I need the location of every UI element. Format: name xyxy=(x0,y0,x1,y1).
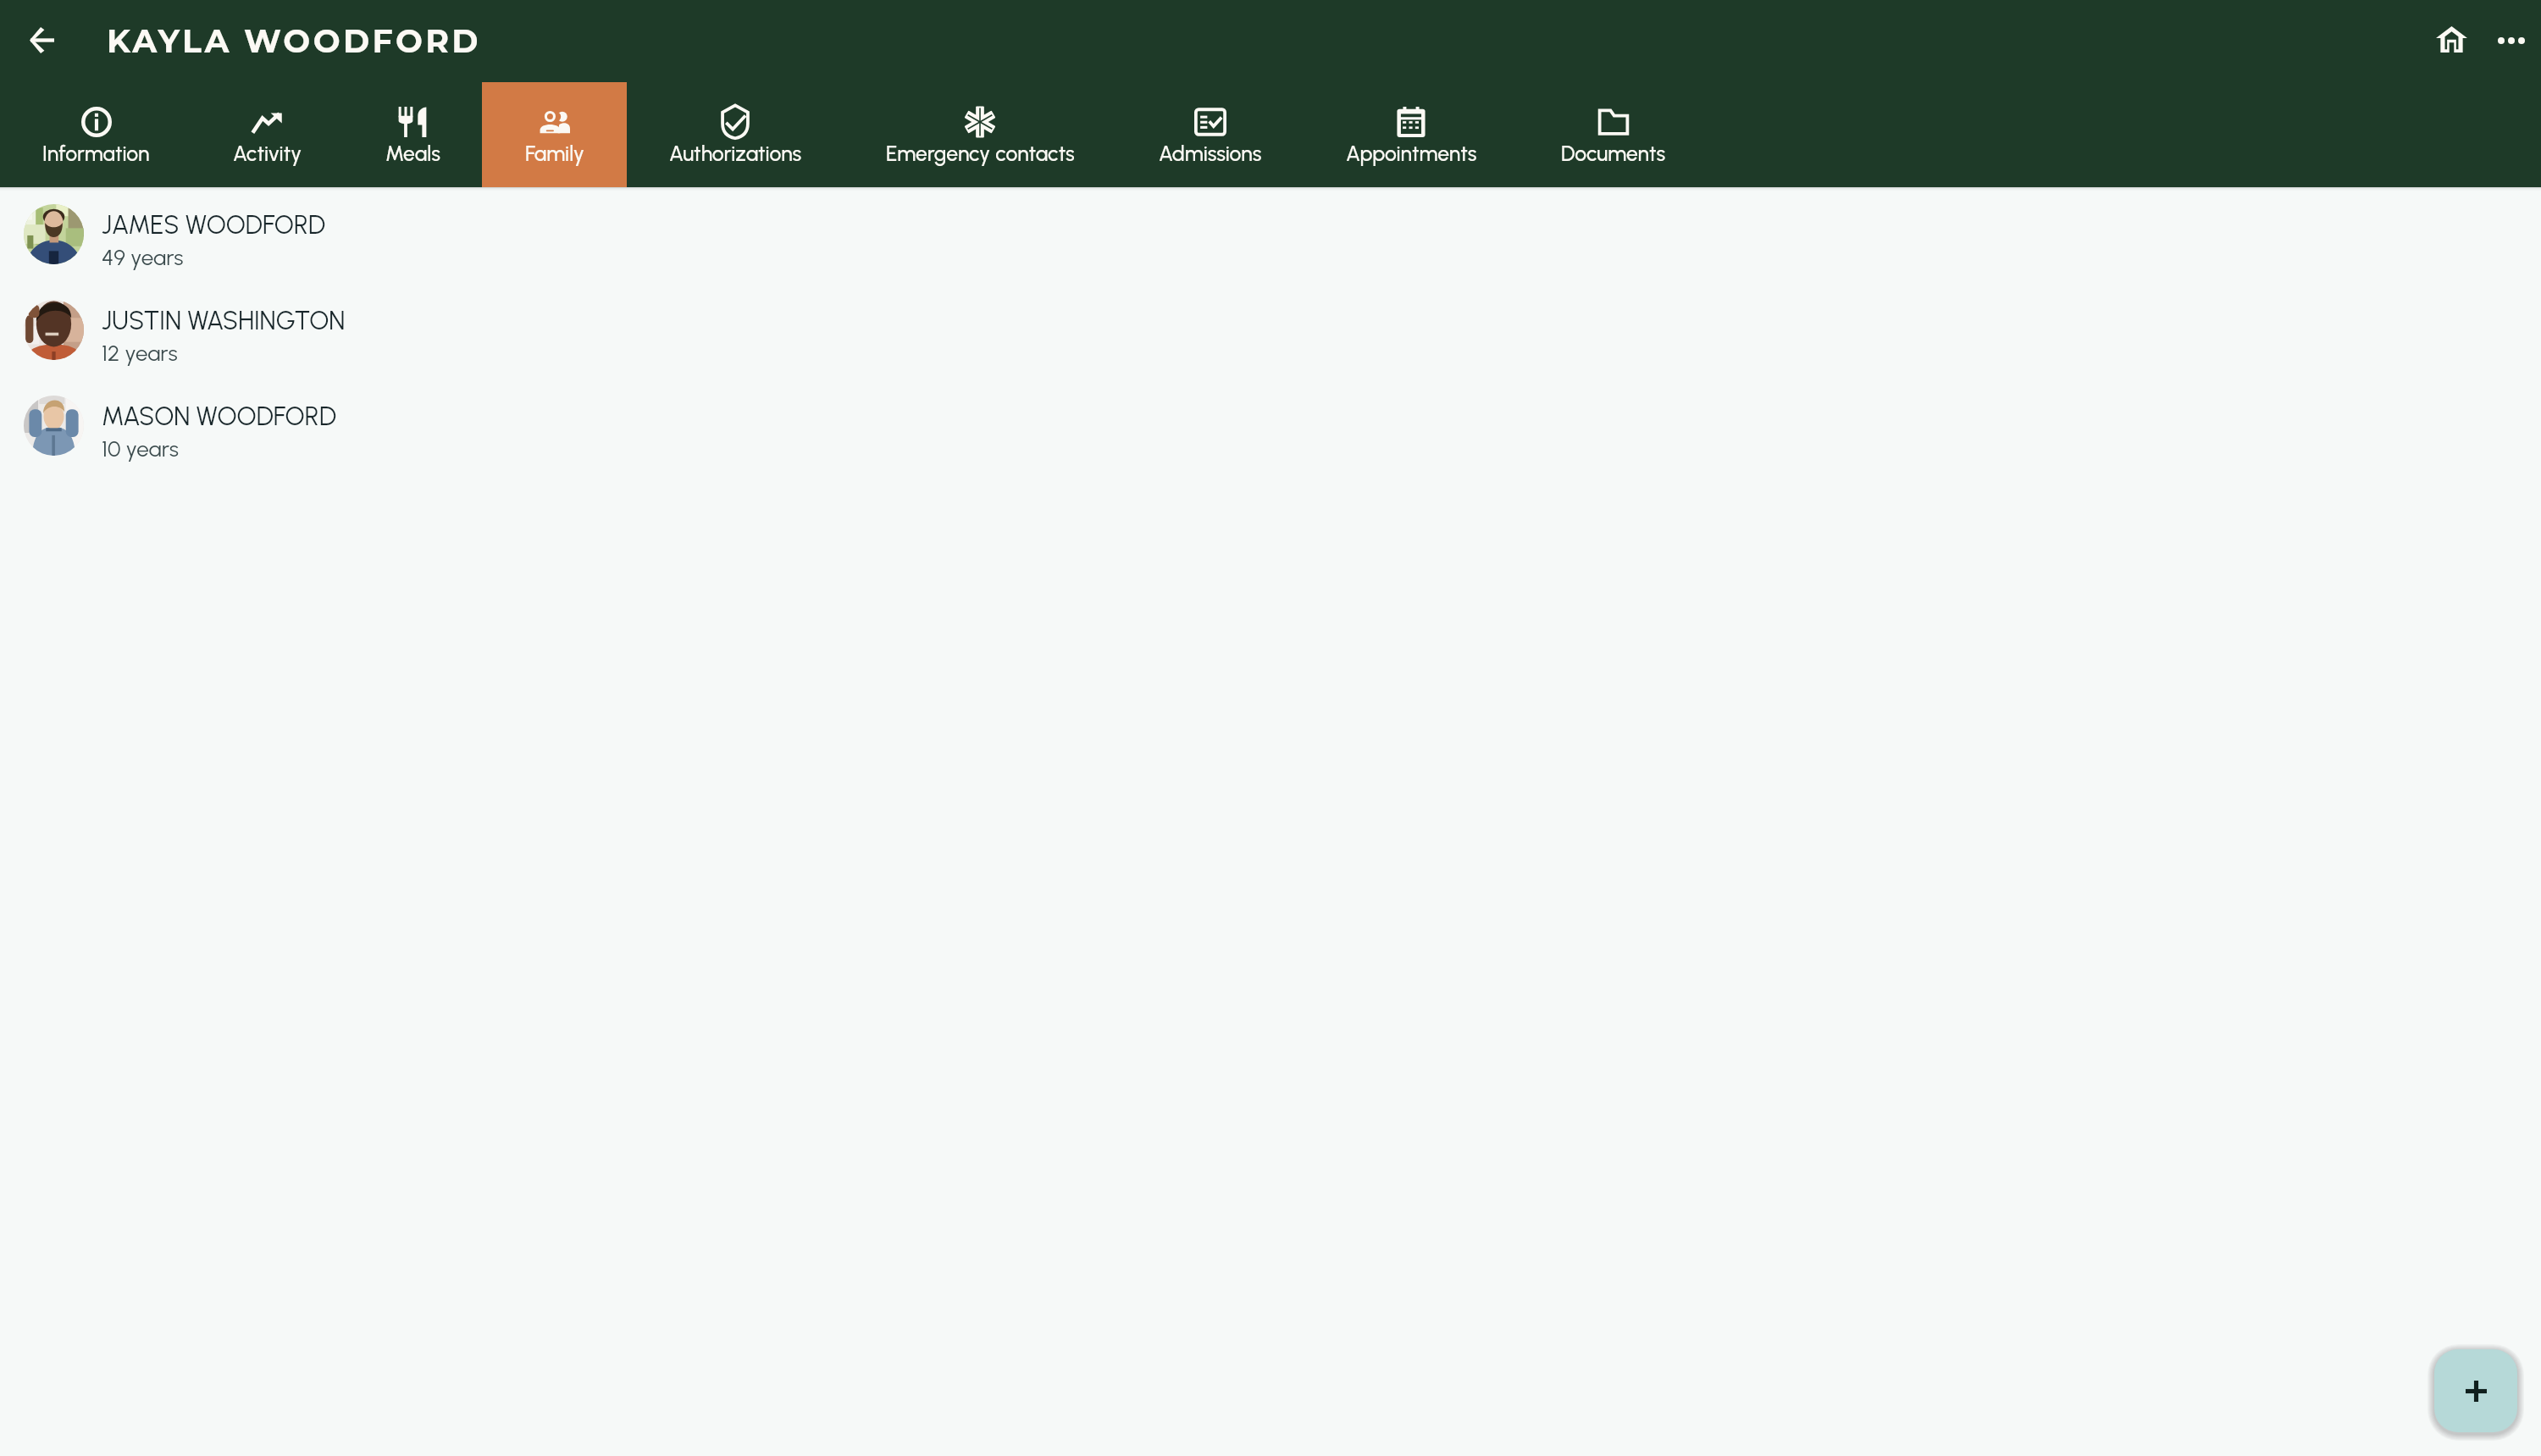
button[interactable]: JUSTIN WASHINGTON xyxy=(0,283,2541,379)
staticText: JAMES WOODFORD xyxy=(102,209,326,240)
staticText: Admissions xyxy=(1159,141,1262,167)
button[interactable]: Home xyxy=(2428,15,2475,63)
staticText: Appointments xyxy=(1346,141,1477,167)
button[interactable]: Documents xyxy=(1519,82,1708,187)
staticText: 49 years xyxy=(102,244,184,270)
button[interactable]: More options xyxy=(2488,17,2535,64)
button[interactable]: Admissions xyxy=(1116,82,1304,187)
staticText: Activity xyxy=(233,141,302,167)
staticText: MASON WOODFORD xyxy=(102,401,337,431)
button[interactable]: Meals xyxy=(343,82,482,187)
staticText: Authorizations xyxy=(669,141,802,167)
button[interactable]: MASON WOODFORD xyxy=(0,379,2541,474)
staticText: Family xyxy=(525,141,584,167)
button[interactable]: Appointments xyxy=(1304,82,1519,187)
staticText: Meals xyxy=(385,141,440,167)
staticText: JUSTIN WASHINGTON xyxy=(102,305,346,335)
button[interactable]: Add family member xyxy=(2434,1349,2517,1432)
button[interactable]: Authorizations xyxy=(627,82,844,187)
button[interactable]: JAMES WOODFORD xyxy=(0,187,2541,283)
button[interactable]: Emergency contacts xyxy=(844,82,1116,187)
button[interactable]: Back xyxy=(17,15,66,64)
button[interactable]: Family xyxy=(482,82,627,187)
button[interactable]: Activity xyxy=(192,82,343,187)
staticText: Emergency contacts xyxy=(886,141,1075,167)
staticText: Information xyxy=(42,141,150,167)
button[interactable]: Information xyxy=(0,82,192,187)
staticText: KAYLA WOODFORD xyxy=(107,21,481,60)
staticText: 10 years xyxy=(102,435,179,462)
staticText: 12 years xyxy=(102,340,178,366)
staticText: Documents xyxy=(1561,141,1666,167)
